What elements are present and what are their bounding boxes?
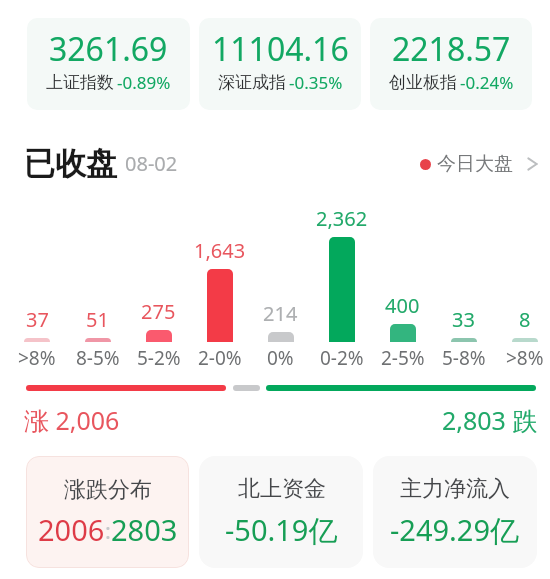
staticText: 2-0% bbox=[198, 345, 242, 366]
button[interactable]: 主力净流入 bbox=[373, 456, 537, 568]
staticText: 已收盘 bbox=[24, 144, 117, 183]
staticText: -0.35% bbox=[289, 71, 343, 94]
staticText: 涨 2,006 bbox=[24, 403, 120, 437]
staticText: 2803 bbox=[111, 510, 178, 549]
staticText: >8% bbox=[18, 345, 56, 366]
staticText: 11104.16 bbox=[212, 27, 349, 71]
staticText: 0-2% bbox=[320, 345, 364, 366]
staticText: 涨跌分布 bbox=[64, 476, 152, 504]
staticText: -249.29亿 bbox=[390, 510, 520, 550]
staticText: 2006 bbox=[38, 510, 105, 549]
staticText: 37 bbox=[26, 306, 49, 333]
staticText: -0.89% bbox=[117, 71, 171, 94]
staticText: 8 bbox=[519, 306, 531, 333]
staticText: 2218.57 bbox=[392, 27, 511, 71]
staticText: 5-2% bbox=[137, 345, 181, 366]
button[interactable]: 11104.16 bbox=[199, 18, 361, 110]
staticText: 275 bbox=[141, 298, 176, 325]
staticText: 主力净流入 bbox=[400, 475, 510, 503]
staticText: >8% bbox=[506, 345, 544, 366]
staticText: 51 bbox=[86, 306, 109, 333]
staticText: 5-8% bbox=[442, 345, 486, 366]
staticText: 创业板指 bbox=[389, 72, 457, 93]
staticText: 8-5% bbox=[76, 345, 120, 366]
staticText: 400 bbox=[385, 292, 420, 319]
staticText: 2,362 bbox=[316, 205, 368, 232]
staticText: 1,643 bbox=[194, 237, 246, 264]
staticText: 北上资金 bbox=[238, 475, 326, 503]
staticText: 上证指数 bbox=[46, 72, 114, 93]
staticText: 214 bbox=[263, 300, 298, 327]
staticText: -0.24% bbox=[460, 71, 514, 94]
button[interactable]: 2218.57 bbox=[370, 18, 532, 110]
staticText: 2,803 跌 bbox=[442, 403, 538, 437]
staticText: 深证成指 bbox=[218, 72, 286, 93]
staticText: 2-5% bbox=[381, 345, 425, 366]
button[interactable]: 北上资金 bbox=[199, 456, 363, 568]
staticText: -50.19亿 bbox=[225, 510, 338, 550]
staticText: 3261.69 bbox=[49, 27, 168, 71]
staticText: 08-02 bbox=[125, 150, 178, 177]
staticText: 今日大盘 bbox=[437, 152, 513, 176]
button[interactable]: 3261.69 bbox=[27, 18, 190, 110]
staticText: 33 bbox=[452, 306, 475, 333]
staticText: : bbox=[105, 515, 111, 545]
staticText: 0% bbox=[267, 345, 294, 366]
button[interactable]: 涨跌分布 bbox=[26, 456, 189, 568]
button[interactable]: 今日大盘 bbox=[420, 152, 538, 176]
